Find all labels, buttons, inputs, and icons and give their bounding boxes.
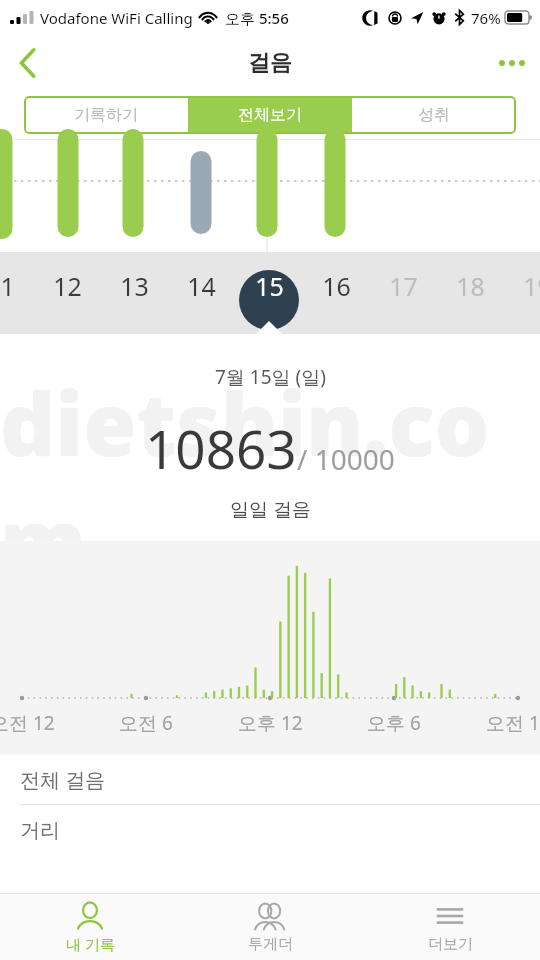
staticText: 성취 [418,105,450,125]
staticText: 전체 걸음 [20,766,106,793]
staticText: 13 [120,269,149,303]
button[interactable]: 13 [108,252,160,334]
button[interactable]: 투게더 [180,894,360,960]
staticText: Vodafone WiFi Calling [40,8,193,28]
button[interactable]: 16 [310,252,362,334]
staticText: 오후 12 [238,710,303,736]
staticText: 14 [187,269,216,303]
staticText: 내 기록 [66,934,115,954]
button[interactable]: More options [484,35,540,91]
staticText: dietshin.com [0,364,540,541]
button[interactable]: 성취 [352,96,516,134]
staticText: 전체보기 [238,105,302,125]
staticText: 오전 12 [486,710,540,736]
button[interactable]: 더보기 [360,894,540,960]
staticText: 거리 [20,818,60,843]
staticText: 12 [53,269,82,303]
staticText: 17 [389,269,418,303]
button[interactable]: 기록하기 [24,96,188,134]
staticText: 오전 6 [119,710,173,736]
staticText: / 10000 [297,440,395,478]
staticText: 걸음 [248,49,292,77]
staticText: 18 [456,269,485,303]
staticText: 76% [471,8,501,28]
staticText: 7월 15일 (일) [215,364,326,390]
staticText: 투게더 [248,935,293,954]
button[interactable]: 12 [41,252,93,334]
button[interactable]: 18 [444,252,496,334]
staticText: 15 [255,269,284,303]
staticText: 19 [523,269,540,303]
staticText: 11 [0,269,15,303]
staticText: 오후 5:56 [225,8,289,28]
staticText: 기록하기 [74,105,138,125]
button[interactable]: 전체 걸음 [0,754,540,805]
button[interactable]: 14 [175,252,227,334]
button[interactable]: Back [0,35,56,91]
staticText: 일일 걸음 [230,496,311,522]
staticText: 오후 6 [367,710,421,736]
staticText: 10863 [145,412,297,484]
staticText: 오전 12 [0,710,55,736]
button[interactable]: 내 기록 [0,894,180,960]
staticText: 16 [322,269,351,303]
staticText: 더보기 [428,935,473,954]
button[interactable]: 11 [0,252,26,334]
button[interactable]: 전체보기 [188,96,352,134]
button[interactable]: 15 [243,252,295,334]
button[interactable]: 17 [377,252,429,334]
button[interactable]: 거리 [0,805,540,855]
button[interactable]: 19 [511,252,540,334]
